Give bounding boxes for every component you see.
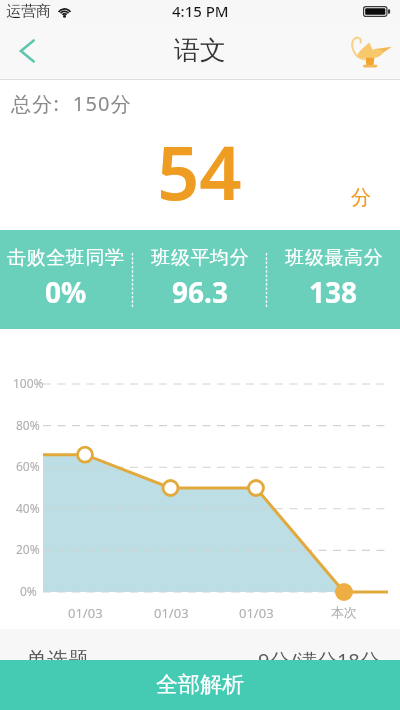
staticText: 运营商 [6,2,51,21]
staticText: 40% [16,500,40,516]
staticText: 80% [16,417,40,433]
staticText: 20% [16,541,40,557]
staticText: 本次 [331,604,357,620]
staticText: 总分: 150分 [11,90,132,117]
staticText: 54 [157,121,242,222]
staticText: 100% [13,375,44,391]
button[interactable]: 单选题 [0,629,400,685]
staticText: 4:15 PM [172,1,229,21]
staticText: 01/03 [68,604,103,622]
button[interactable]: 全部解析 [0,660,400,710]
button[interactable]: Magic lamp [348,28,394,74]
staticText: 01/03 [154,604,189,622]
staticText: 60% [16,458,40,474]
staticText: 分 [351,185,371,210]
staticText: 0% [45,273,87,311]
staticText: 9分/满分18分 [258,647,380,674]
staticText: 班级平均分 [151,246,249,270]
staticText: 击败全班同学 [7,246,125,270]
staticText: 单选题 [26,647,89,673]
staticText: 96.3 [172,273,228,311]
staticText: 班级最高分 [285,246,383,270]
staticText: 138 [309,273,358,311]
button[interactable]: Back [0,24,54,78]
staticText: 全部解析 [156,671,244,699]
staticText: 语文 [174,34,226,67]
staticText: 01/03 [239,604,274,622]
button[interactable]: 班级平均分 [133,230,266,329]
button[interactable]: 班级最高分 [267,230,400,329]
staticText: 0% [20,583,37,599]
button[interactable]: 击败全班同学 [0,230,132,329]
